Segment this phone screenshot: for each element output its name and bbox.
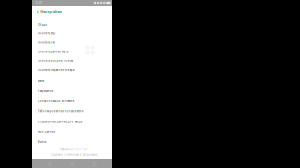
- staticText: Общие: [38, 23, 47, 27]
- staticText: Очистить кэш: [38, 31, 55, 35]
- staticText: □: [92, 161, 96, 166]
- button[interactable]: Разрешения: [32, 86, 112, 96]
- staticText: ◁: [48, 161, 51, 166]
- staticText: Очистить данные My ID: [38, 50, 69, 53]
- button[interactable]: Заблокированные пользователи: [32, 106, 112, 116]
- staticText: Места: [38, 79, 44, 83]
- staticText: Заблокированные пользователи: [38, 109, 84, 113]
- button[interactable]: Recent apps: [89, 159, 99, 168]
- button[interactable]: Очистить данные My ID: [32, 46, 112, 56]
- staticText: Очистить чат: [38, 41, 55, 44]
- staticText: Очистить Недавние товары: [38, 68, 75, 72]
- staticText: Сделано с любовью в Андижане: [51, 153, 97, 156]
- staticText: ‹: [37, 7, 39, 16]
- staticText: Разрешения: [38, 89, 54, 93]
- button[interactable]: Очистить кэш: [32, 28, 112, 38]
- button[interactable]: ‹: [32, 5, 112, 17]
- staticText: Очистить историю поиска: [38, 59, 73, 62]
- staticText: Выйти: [38, 140, 47, 144]
- button[interactable]: Очистить чат: [32, 37, 112, 47]
- button[interactable]: Синхронизация контактов: [32, 96, 112, 106]
- button[interactable]: Сохранённые данные для входа: [32, 116, 112, 126]
- staticText: ○: [70, 161, 73, 166]
- button[interactable]: Мои данные: [32, 127, 112, 137]
- button[interactable]: Места: [32, 76, 112, 86]
- staticText: Настройки: [40, 9, 62, 14]
- button[interactable]: Очистить историю поиска: [32, 56, 112, 66]
- button[interactable]: Очистить Недавние товары: [32, 65, 112, 75]
- staticText: Версия 4.13.11.07: [60, 147, 88, 151]
- staticText: 5:41: [36, 1, 43, 5]
- button[interactable]: Выйти: [32, 137, 112, 147]
- staticText: Синхронизация контактов: [38, 99, 75, 103]
- staticText: Мои данные: [38, 130, 55, 133]
- staticText: Сохранённые данные для входа: [38, 120, 82, 123]
